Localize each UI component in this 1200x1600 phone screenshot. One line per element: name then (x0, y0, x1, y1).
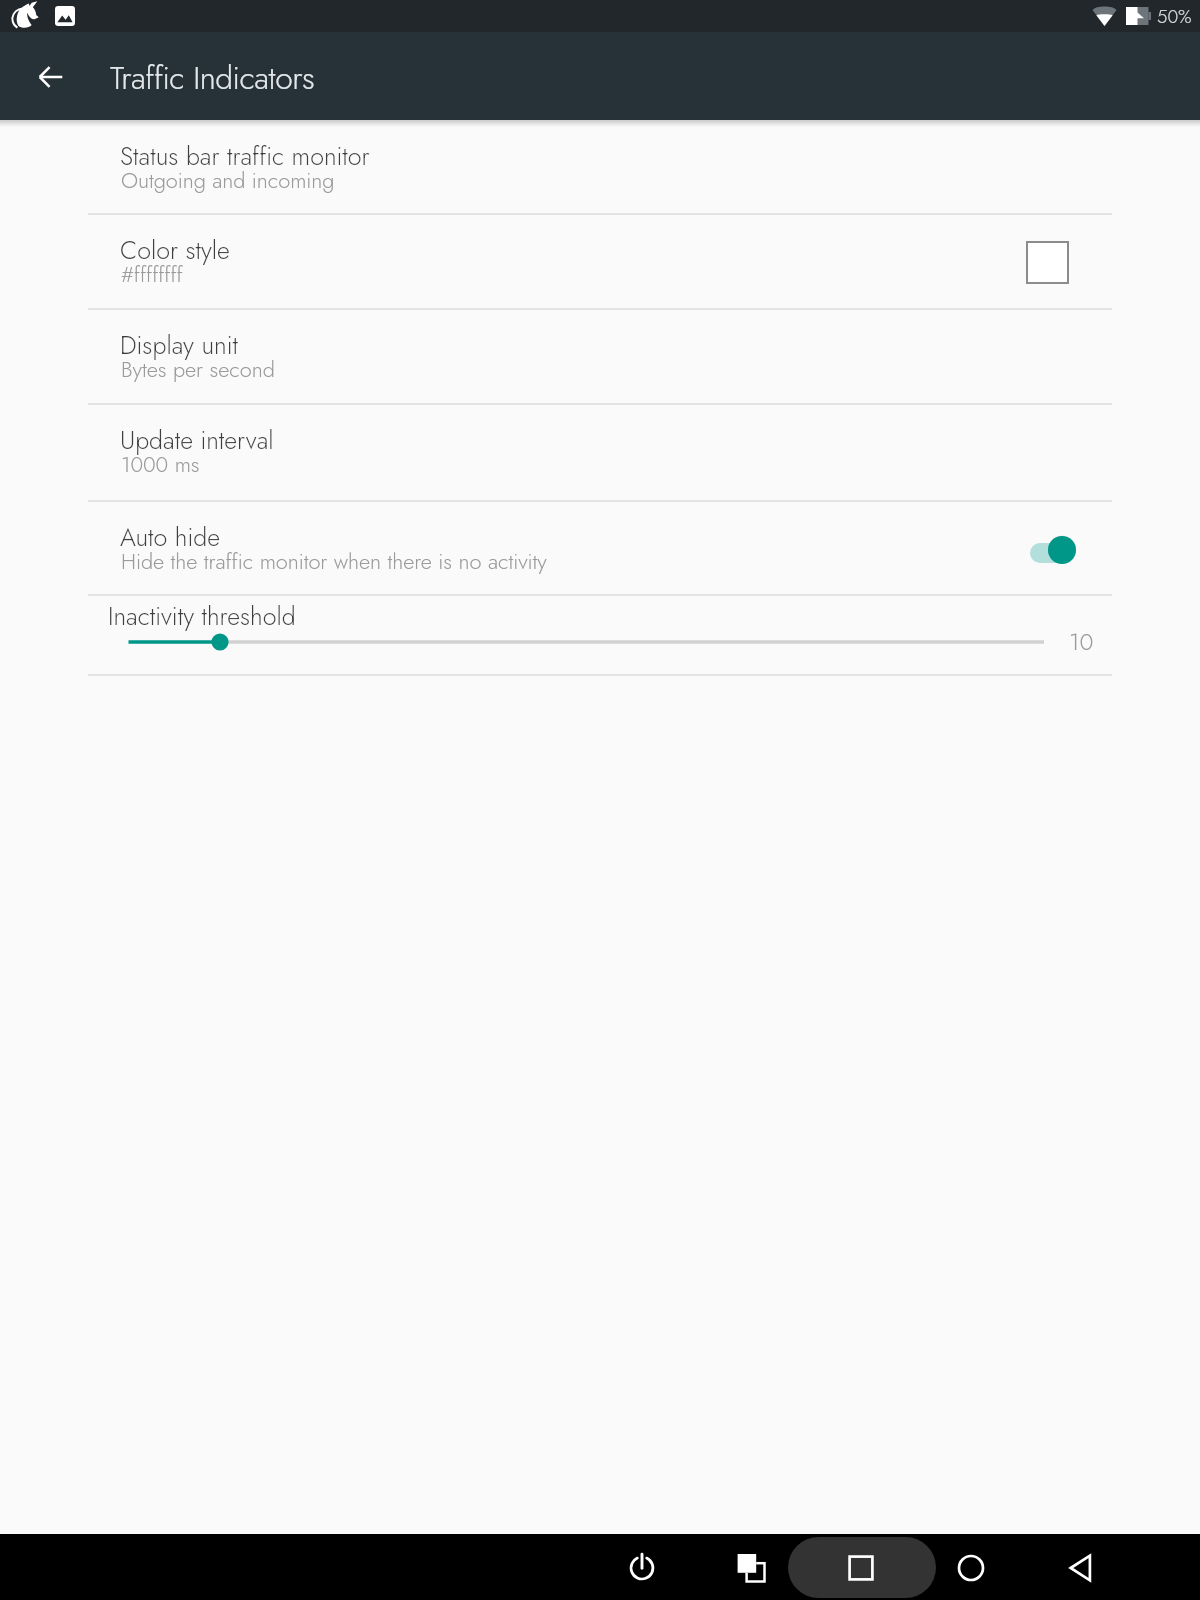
staticText: Traffic Indicators (110, 55, 315, 101)
button[interactable]: Display unit (0, 309, 1200, 404)
staticText: Inactivity threshold (108, 598, 296, 634)
staticText: Auto hide (120, 519, 220, 555)
staticText: Bytes per second (121, 354, 275, 386)
button[interactable]: Update interval (0, 404, 1200, 501)
button[interactable]: Auto hide (0, 501, 1200, 595)
staticText: Display unit (120, 327, 238, 363)
button[interactable]: Back (1053, 1541, 1107, 1595)
staticText: 10 (1069, 624, 1094, 659)
staticText: Update interval (120, 422, 274, 458)
staticText: #ffffffff (121, 259, 183, 291)
button[interactable]: Power (615, 1541, 669, 1595)
staticText: Color style (120, 232, 230, 268)
button[interactable]: Home (944, 1541, 998, 1595)
button[interactable]: Navigate up (23, 49, 79, 105)
button[interactable]: Recent apps (834, 1541, 888, 1595)
staticText: Outgoing and incoming (121, 165, 335, 197)
staticText: Hide the traffic monitor when there is n… (121, 546, 547, 578)
staticText: Status bar traffic monitor (120, 138, 370, 174)
button[interactable]: Color style (0, 214, 1200, 309)
staticText: 50% (1157, 3, 1192, 30)
staticText: 1000 ms (121, 449, 200, 481)
button[interactable]: Status bar traffic monitor (0, 120, 1200, 214)
button[interactable]: Inactivity threshold (0, 595, 1200, 675)
button[interactable]: Screenshot (724, 1540, 778, 1594)
